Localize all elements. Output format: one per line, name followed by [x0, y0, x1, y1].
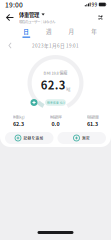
button[interactable]: 年 — [83, 26, 105, 39]
staticText: BMI 19.8 偏瘦 — [43, 70, 67, 76]
button[interactable]: 記録を追加 — [5, 132, 53, 144]
button[interactable]: 体重管理 — [19, 11, 45, 18]
staticText: 日 — [23, 27, 29, 35]
staticText: 2023年1月6日 19:01 — [32, 42, 79, 49]
staticText: kg — [66, 86, 70, 92]
staticText: 標準体重 61.3 — [47, 101, 64, 104]
staticText: 99 — [91, 1, 98, 8]
staticText: 現在のユーザー：はなさん — [19, 19, 55, 24]
button[interactable]: 日 — [15, 26, 38, 39]
staticText: 19:00 — [5, 0, 23, 9]
button[interactable]: 週 — [38, 26, 60, 39]
button[interactable]: More options — [94, 11, 107, 24]
staticText: 除脂肪量 — [86, 114, 98, 119]
staticText: 体重(kg) — [12, 114, 24, 119]
button[interactable]: Previous day — [4, 39, 16, 51]
staticText: 62.3 — [41, 76, 66, 93]
button[interactable]: 測定 — [57, 132, 106, 144]
staticText: 体重管理 — [19, 11, 39, 18]
staticText: 記録を追加 — [23, 135, 43, 141]
staticText: 61.3 — [87, 120, 98, 128]
button[interactable]: 月 — [60, 26, 83, 39]
staticText: 週 — [46, 27, 52, 35]
staticText: 体脂肪率 — [49, 114, 61, 119]
staticText: 測定 — [82, 135, 90, 141]
staticText: 月 — [69, 27, 75, 35]
staticText: 0.0 — [51, 120, 59, 128]
staticText: 年 — [91, 27, 97, 35]
button[interactable]: Back — [3, 10, 17, 25]
staticText: 62.3 — [13, 120, 24, 128]
